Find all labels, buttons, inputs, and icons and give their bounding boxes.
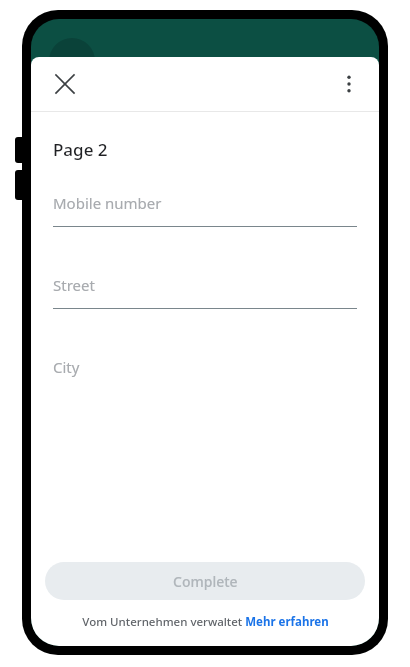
staticText: Page 2 <box>53 138 108 161</box>
staticText: Vom Unternehmen verwaltet Mehr erfahren <box>82 614 329 630</box>
staticText: Street <box>53 275 95 295</box>
button[interactable]: City <box>53 357 357 377</box>
staticText: Mobile number <box>53 193 162 213</box>
staticText: Complete <box>173 572 238 591</box>
button[interactable]: Power <box>15 170 24 200</box>
button[interactable]: More options <box>325 60 373 108</box>
button[interactable]: Complete <box>45 562 365 600</box>
button[interactable]: Volume up <box>15 137 24 163</box>
button[interactable]: Close <box>41 60 89 108</box>
staticText: City <box>53 357 80 377</box>
button[interactable]: Mobile number <box>53 193 357 213</box>
button[interactable]: Street <box>53 275 357 295</box>
button[interactable]: Vom Unternehmen verwaltet Mehr erfahren <box>31 614 379 630</box>
